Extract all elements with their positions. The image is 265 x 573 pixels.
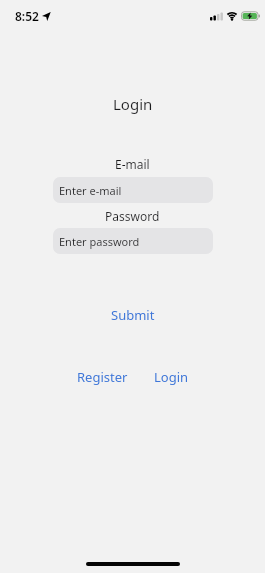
staticText: Register [77,368,128,386]
staticText: Submit [111,306,155,324]
staticText: Login [113,94,153,114]
staticText: Enter password [59,234,140,249]
button[interactable]: Enter e-mail [53,177,213,203]
button[interactable]: Submit [111,306,155,324]
button[interactable]: Enter password [53,228,213,254]
button[interactable]: Login [154,368,189,386]
button[interactable]: Register [77,368,128,386]
staticText: Password [105,208,160,224]
staticText: 8:52 [15,8,39,24]
staticText: Login [154,368,189,386]
staticText: Enter e-mail [59,183,122,198]
staticText: E-mail [115,156,150,172]
